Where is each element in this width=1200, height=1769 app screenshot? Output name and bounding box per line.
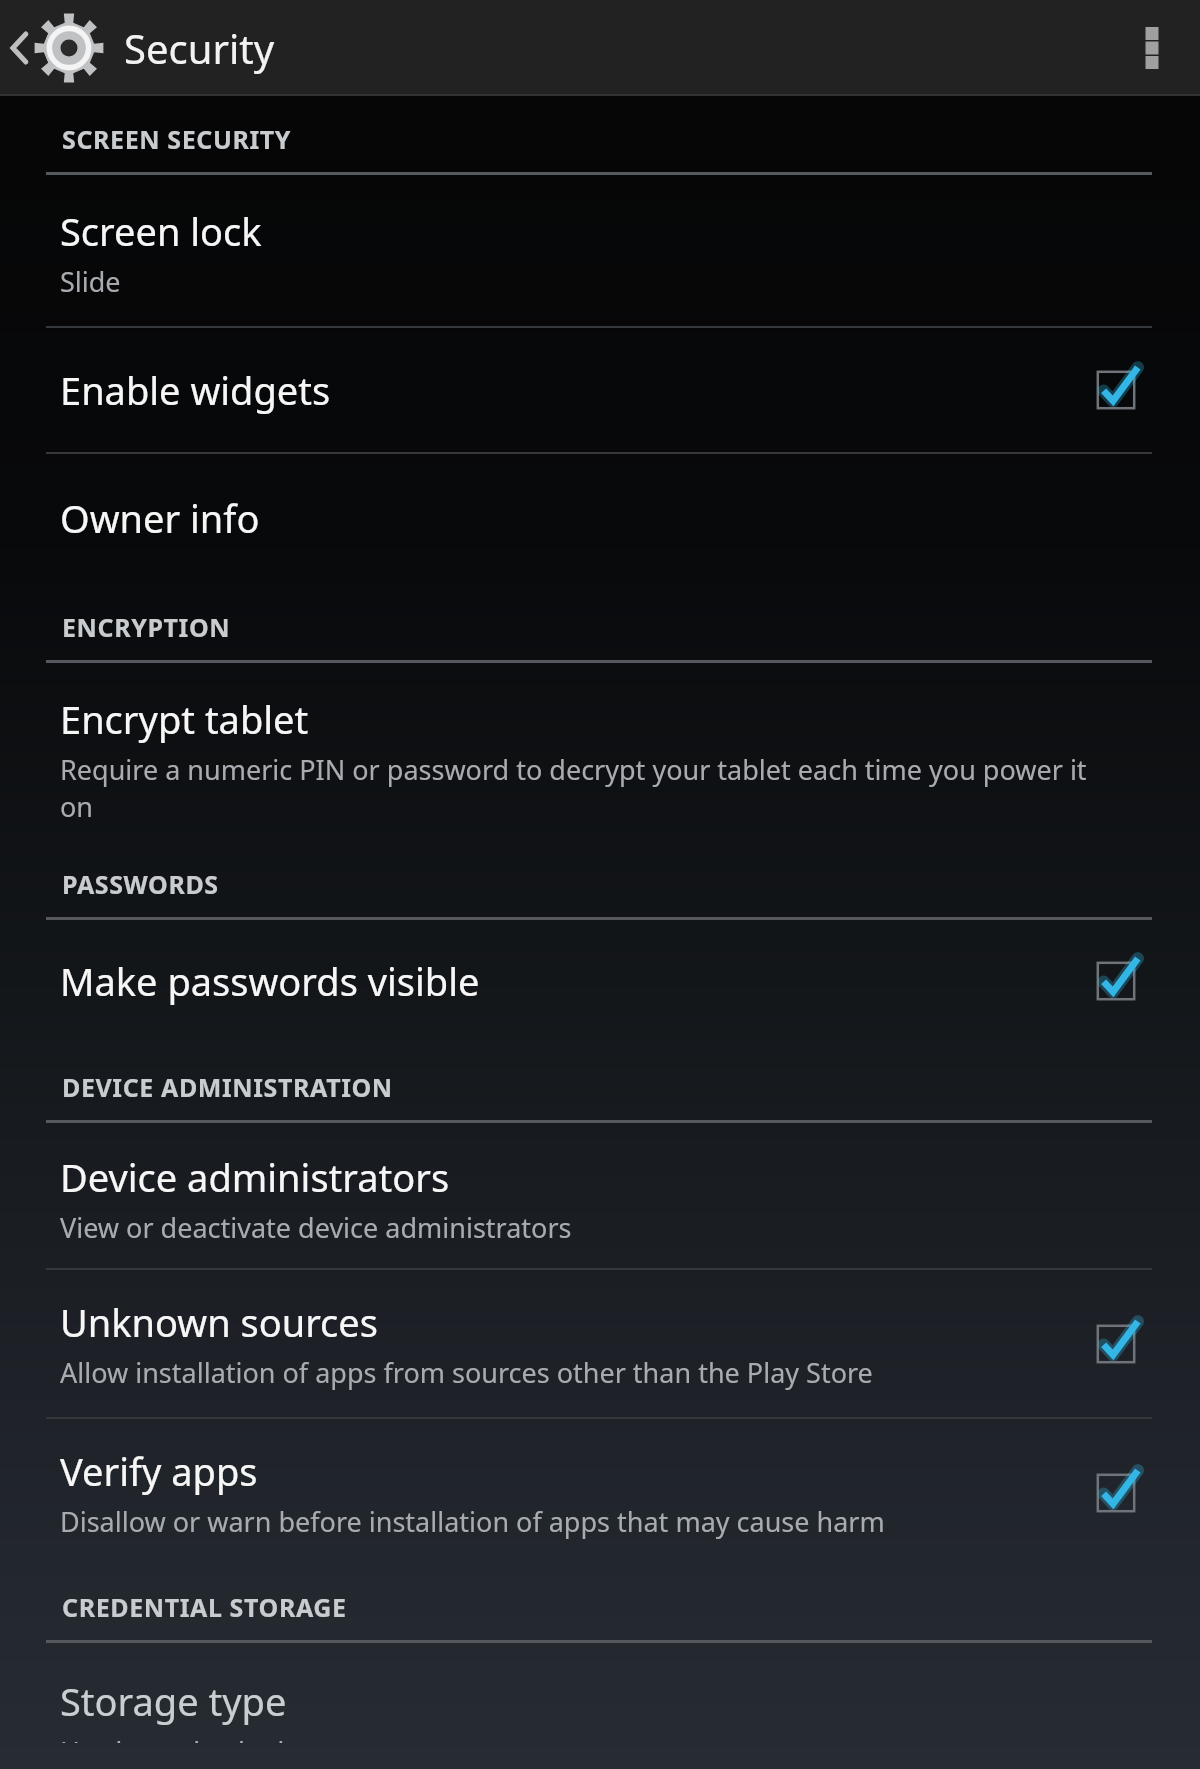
staticText: Hardware-backed xyxy=(60,1733,285,1743)
button[interactable]: Owner info xyxy=(0,454,1200,582)
button[interactable]: Enable widgets xyxy=(0,328,1200,452)
staticText: Owner info xyxy=(60,492,260,544)
staticText: Require a numeric PIN or password to dec… xyxy=(60,751,1087,788)
staticText: Enable widgets xyxy=(60,364,1090,416)
staticText: Security xyxy=(124,21,275,75)
button[interactable]: Screen lock xyxy=(0,175,1200,326)
staticText: Device administrators xyxy=(60,1151,450,1203)
button[interactable]: More options xyxy=(1104,0,1200,96)
other: Enabled xyxy=(1090,1318,1142,1370)
other: Enabled xyxy=(1090,364,1142,416)
staticText: View or deactivate device administrators xyxy=(60,1209,572,1246)
button[interactable]: Verify apps xyxy=(0,1419,1200,1566)
staticText: PASSWORDS xyxy=(62,867,219,901)
button[interactable]: Make passwords visible xyxy=(0,920,1200,1042)
button[interactable]: Navigate up xyxy=(0,0,275,96)
staticText: Unknown sources xyxy=(60,1296,378,1348)
other: Enabled xyxy=(1090,955,1142,1007)
button[interactable]: Encrypt tablet xyxy=(0,663,1200,843)
staticText: Allow installation of apps from sources … xyxy=(60,1354,873,1391)
staticText: Screen lock xyxy=(60,205,262,257)
staticText: Make passwords visible xyxy=(60,955,1090,1007)
staticText: Disallow or warn before installation of … xyxy=(60,1503,885,1540)
button[interactable]: Device administrators xyxy=(0,1123,1200,1268)
staticText: on xyxy=(60,788,94,825)
staticText: ENCRYPTION xyxy=(62,610,231,644)
staticText: Slide xyxy=(60,263,121,300)
staticText: SCREEN SECURITY xyxy=(62,122,291,156)
staticText: Encrypt tablet xyxy=(60,693,309,745)
button[interactable]: Unknown sources xyxy=(0,1270,1200,1417)
staticText: Verify apps xyxy=(60,1445,258,1497)
staticText: Storage type xyxy=(60,1675,287,1727)
staticText: CREDENTIAL STORAGE xyxy=(62,1590,347,1624)
other: Enabled xyxy=(1090,1467,1142,1519)
other: Navigate up xyxy=(4,0,28,96)
staticText: DEVICE ADMINISTRATION xyxy=(62,1070,393,1104)
button[interactable]: Storage type xyxy=(0,1643,1200,1769)
